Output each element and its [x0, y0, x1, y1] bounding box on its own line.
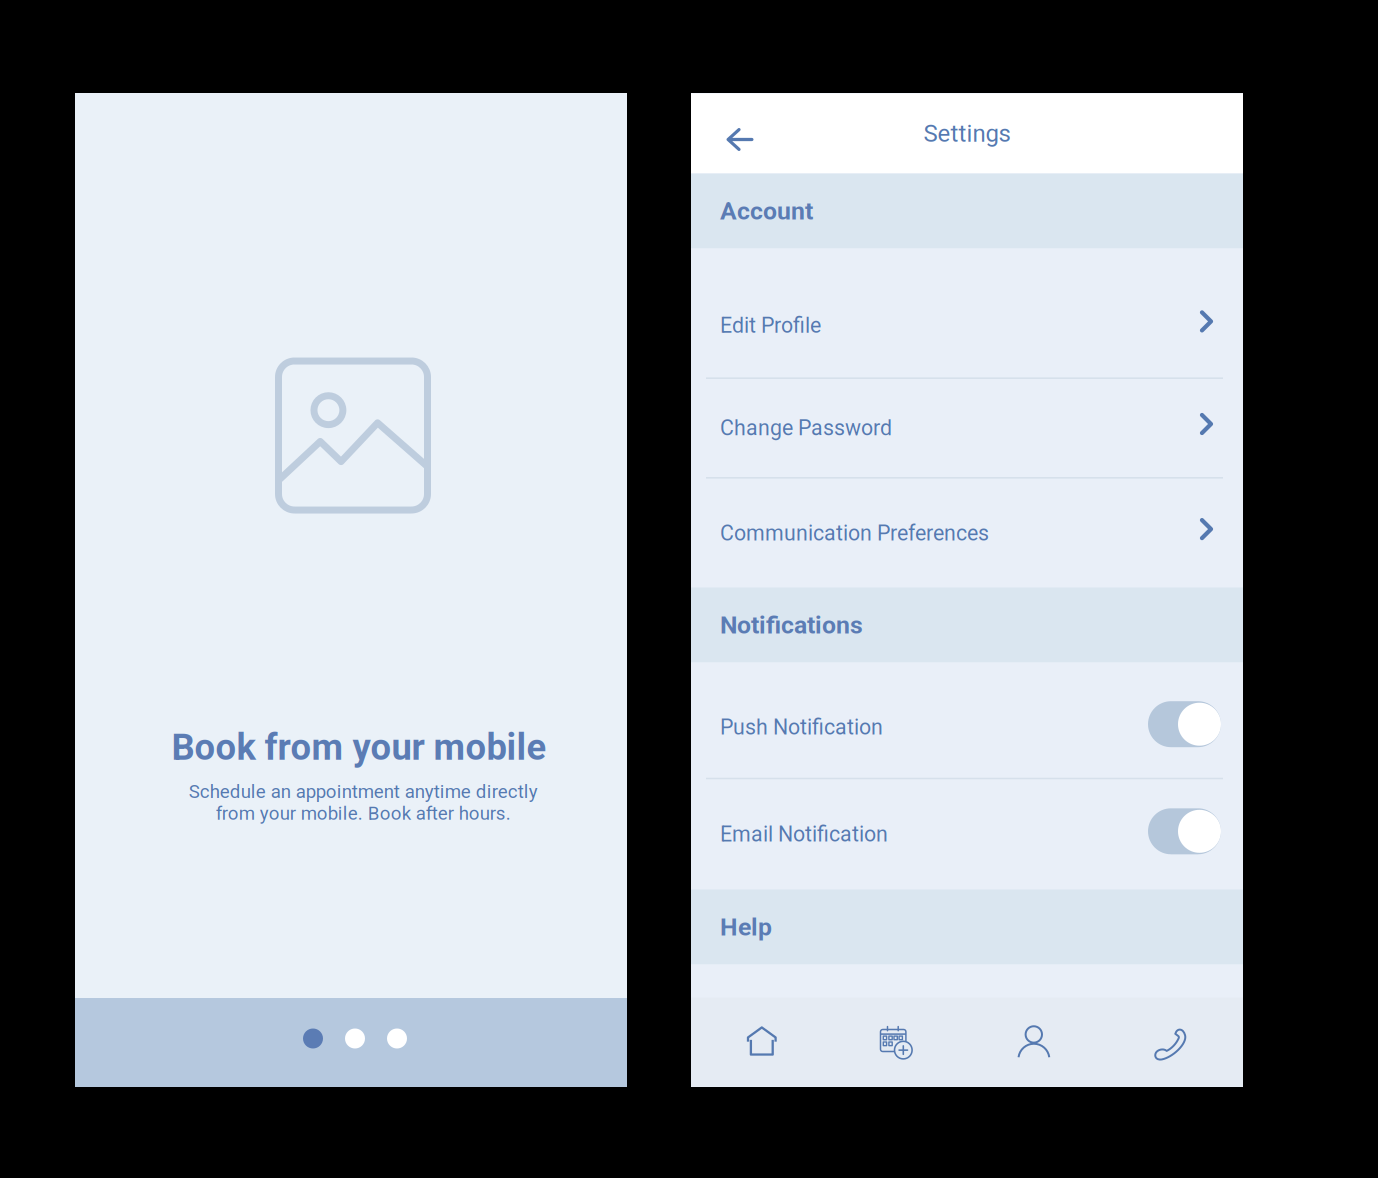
button[interactable]: Change Password: [691, 379, 1243, 477]
staticText: Schedule an appointment anytime directly…: [188, 781, 537, 824]
button[interactable]: Email Notification: [691, 779, 1243, 889]
staticText: Push Notification: [720, 715, 883, 740]
button[interactable]: Call: [1120, 999, 1220, 1088]
button[interactable]: Book appointment: [846, 998, 946, 1087]
button[interactable]: Edit Profile: [691, 273, 1243, 377]
button[interactable]: Push Notification: [691, 677, 1243, 778]
staticText: Communication Preferences: [720, 521, 989, 546]
staticText: Notifications: [720, 610, 863, 640]
staticText: Email Notification: [720, 822, 888, 847]
staticText: Help: [720, 912, 772, 942]
button[interactable]: Profile: [984, 997, 1084, 1086]
staticText: Book from your mobile: [171, 726, 546, 769]
staticText: Edit Profile: [720, 313, 821, 338]
staticText: Change Password: [720, 415, 892, 440]
button[interactable]: Communication Preferences: [691, 479, 1243, 588]
button[interactable]: Home: [712, 996, 812, 1085]
staticText: Account: [720, 196, 813, 226]
staticText: Settings: [923, 119, 1010, 147]
button[interactable]: Back: [709, 110, 771, 168]
